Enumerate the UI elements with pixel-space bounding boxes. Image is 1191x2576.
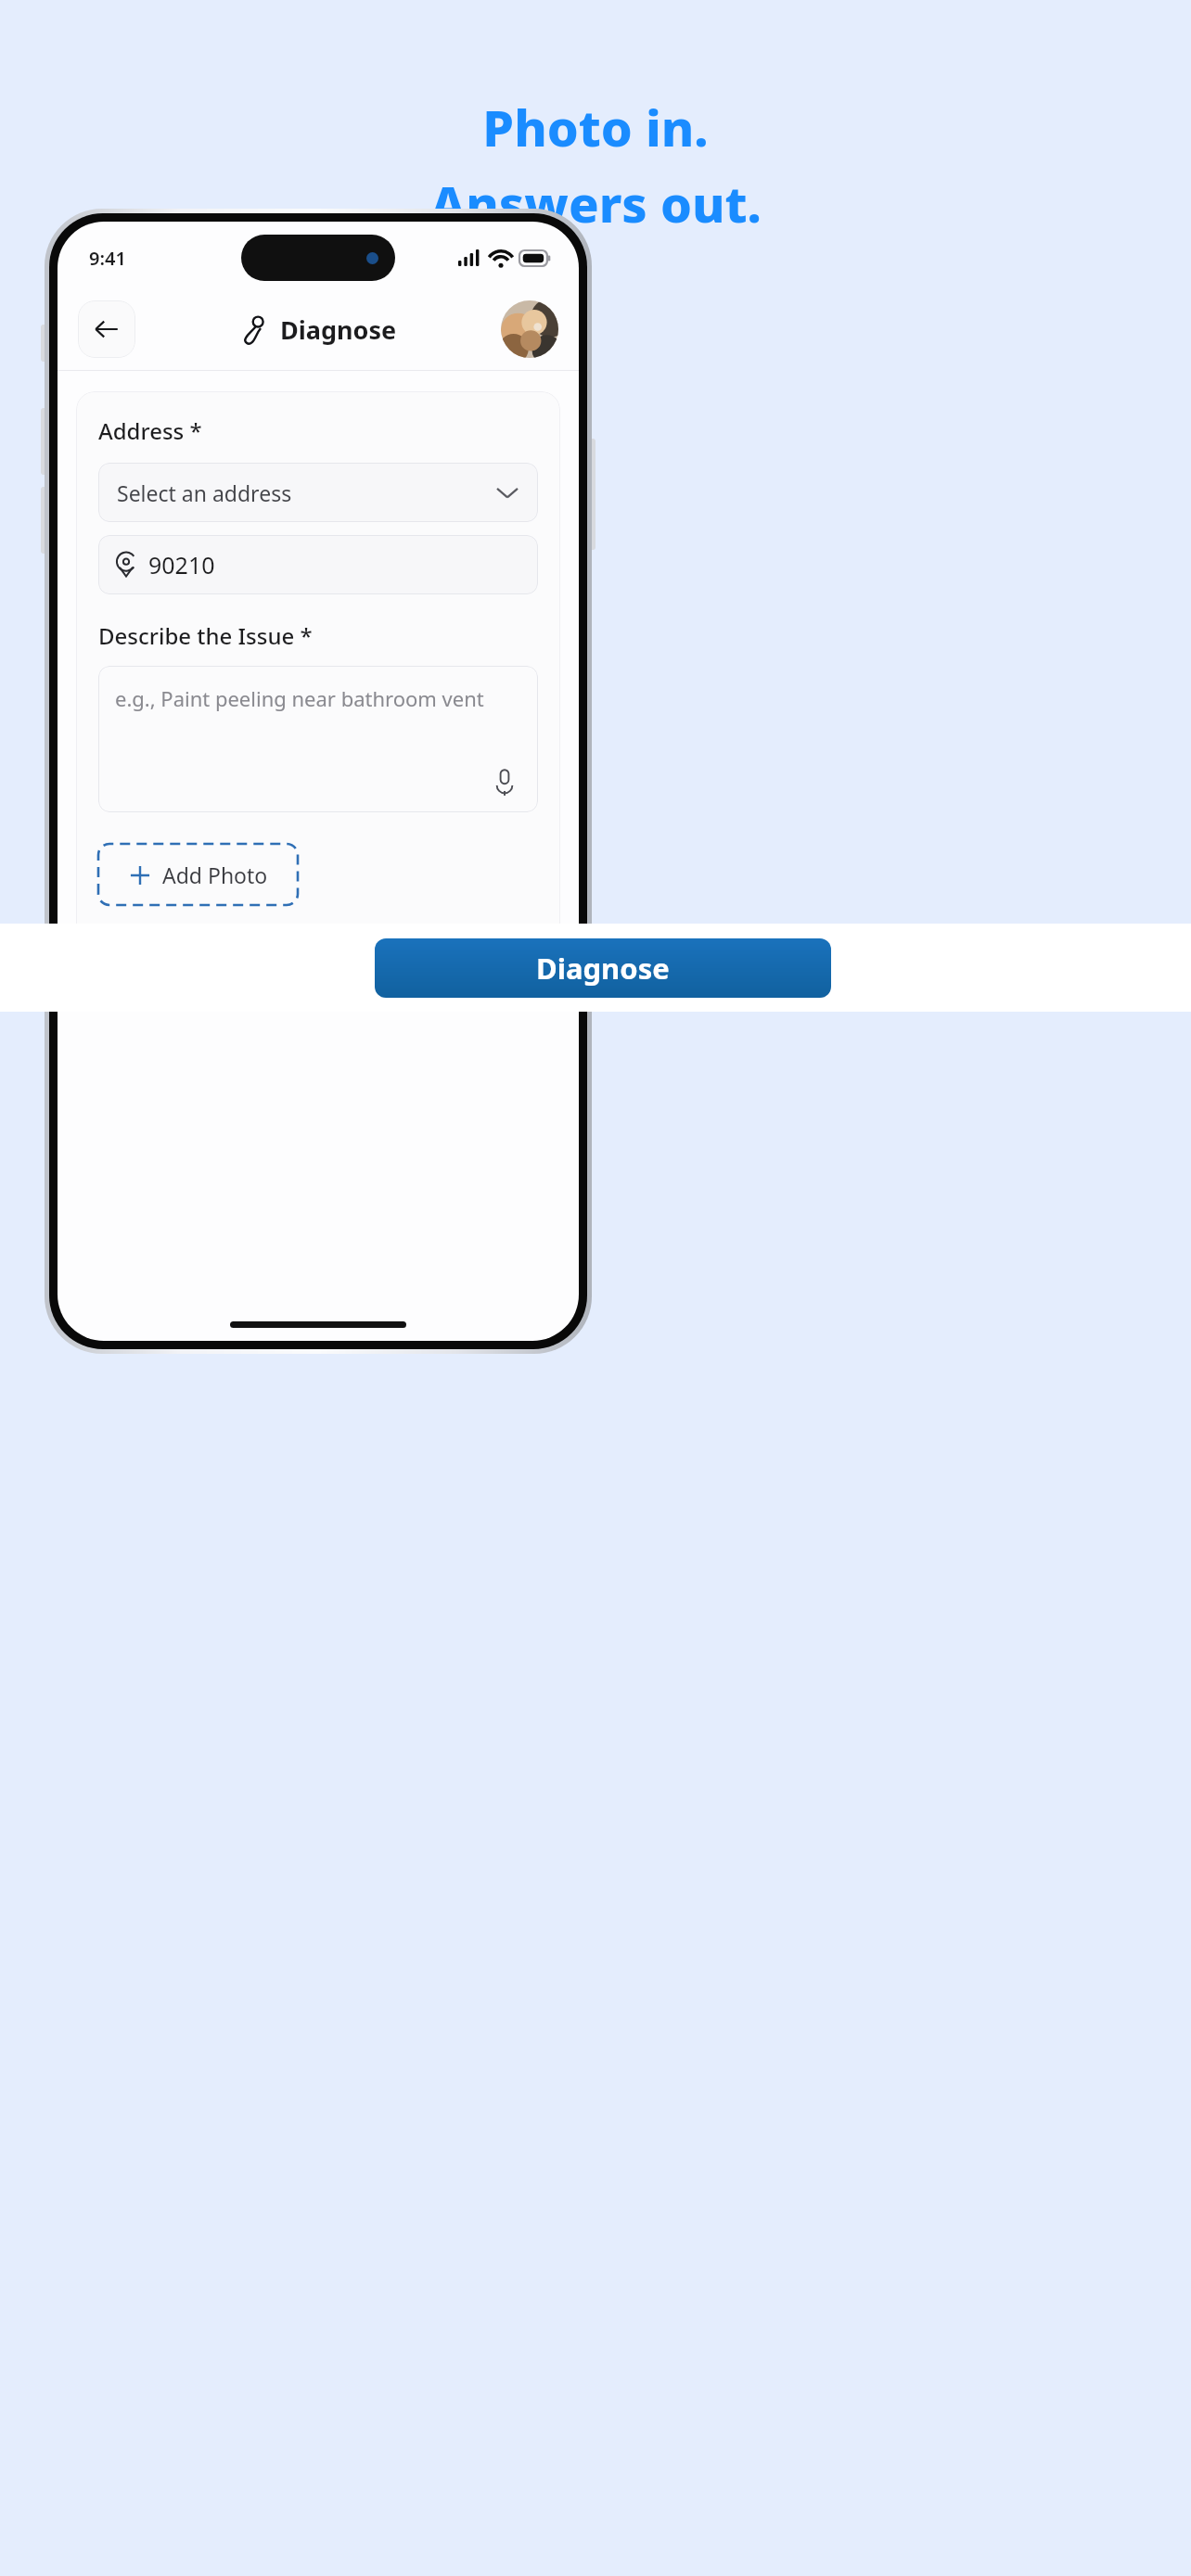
button[interactable]: e.g., Paint peeling near bathroom vent [98, 666, 538, 812]
staticText: Photo in. [482, 93, 709, 161]
button[interactable]: Voice input [488, 766, 521, 799]
staticText: Diagnose [280, 312, 397, 347]
button[interactable]: Back [78, 300, 135, 358]
button[interactable]: 90210 [98, 535, 538, 594]
staticText: 9:41 [89, 246, 126, 271]
button[interactable]: Select an address [98, 463, 538, 522]
staticText: 90210 [148, 549, 215, 580]
staticText: Add Photo [162, 861, 268, 889]
staticText: Answers out. [430, 169, 762, 237]
staticText: Address * [98, 415, 202, 446]
button[interactable]: Diagnose [375, 938, 831, 998]
staticText: Diagnose [536, 949, 670, 988]
button[interactable]: Profile [501, 300, 558, 358]
staticText: Describe the Issue * [98, 620, 313, 651]
button[interactable]: Add Photo [98, 844, 298, 905]
staticText: Select an address [117, 478, 292, 507]
staticText: e.g., Paint peeling near bathroom vent [115, 684, 484, 712]
